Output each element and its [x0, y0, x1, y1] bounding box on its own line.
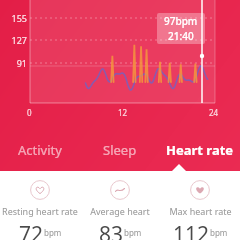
staticText: 72 [19, 220, 44, 240]
staticText: Activity [18, 141, 62, 159]
staticText: 91 [16, 57, 27, 69]
staticText: 21:40 [168, 29, 194, 43]
staticText: 0 [27, 107, 32, 118]
button[interactable]: Average heart [80, 171, 160, 240]
staticText: Max heart rate [169, 205, 232, 217]
staticText: 127 [11, 34, 27, 46]
staticText: Average heart [90, 205, 150, 217]
button[interactable]: Max heart rate [160, 171, 240, 240]
button[interactable]: Heart rate [160, 129, 240, 171]
button[interactable]: Activity [0, 129, 80, 171]
staticText: bpm [44, 227, 62, 238]
staticText: 83 [99, 220, 124, 240]
staticText: bpm [210, 227, 228, 238]
button[interactable]: 97bpm [157, 13, 205, 44]
other: Average heart [110, 180, 130, 200]
other: Resting heart rate [30, 180, 50, 200]
staticText: 12 [118, 107, 128, 118]
staticText: Resting heart rate [2, 205, 78, 217]
button[interactable]: Sleep [80, 129, 160, 171]
staticText: bpm [124, 227, 142, 238]
staticText: 155 [11, 12, 27, 24]
staticText: Sleep [103, 141, 137, 159]
staticText: 97bpm [164, 14, 198, 28]
staticText: Heart rate [166, 141, 234, 159]
staticText: 24 [209, 107, 219, 118]
other: Max heart rate [190, 180, 210, 200]
button[interactable]: Resting heart rate [0, 171, 80, 240]
staticText: 112 [173, 220, 210, 240]
